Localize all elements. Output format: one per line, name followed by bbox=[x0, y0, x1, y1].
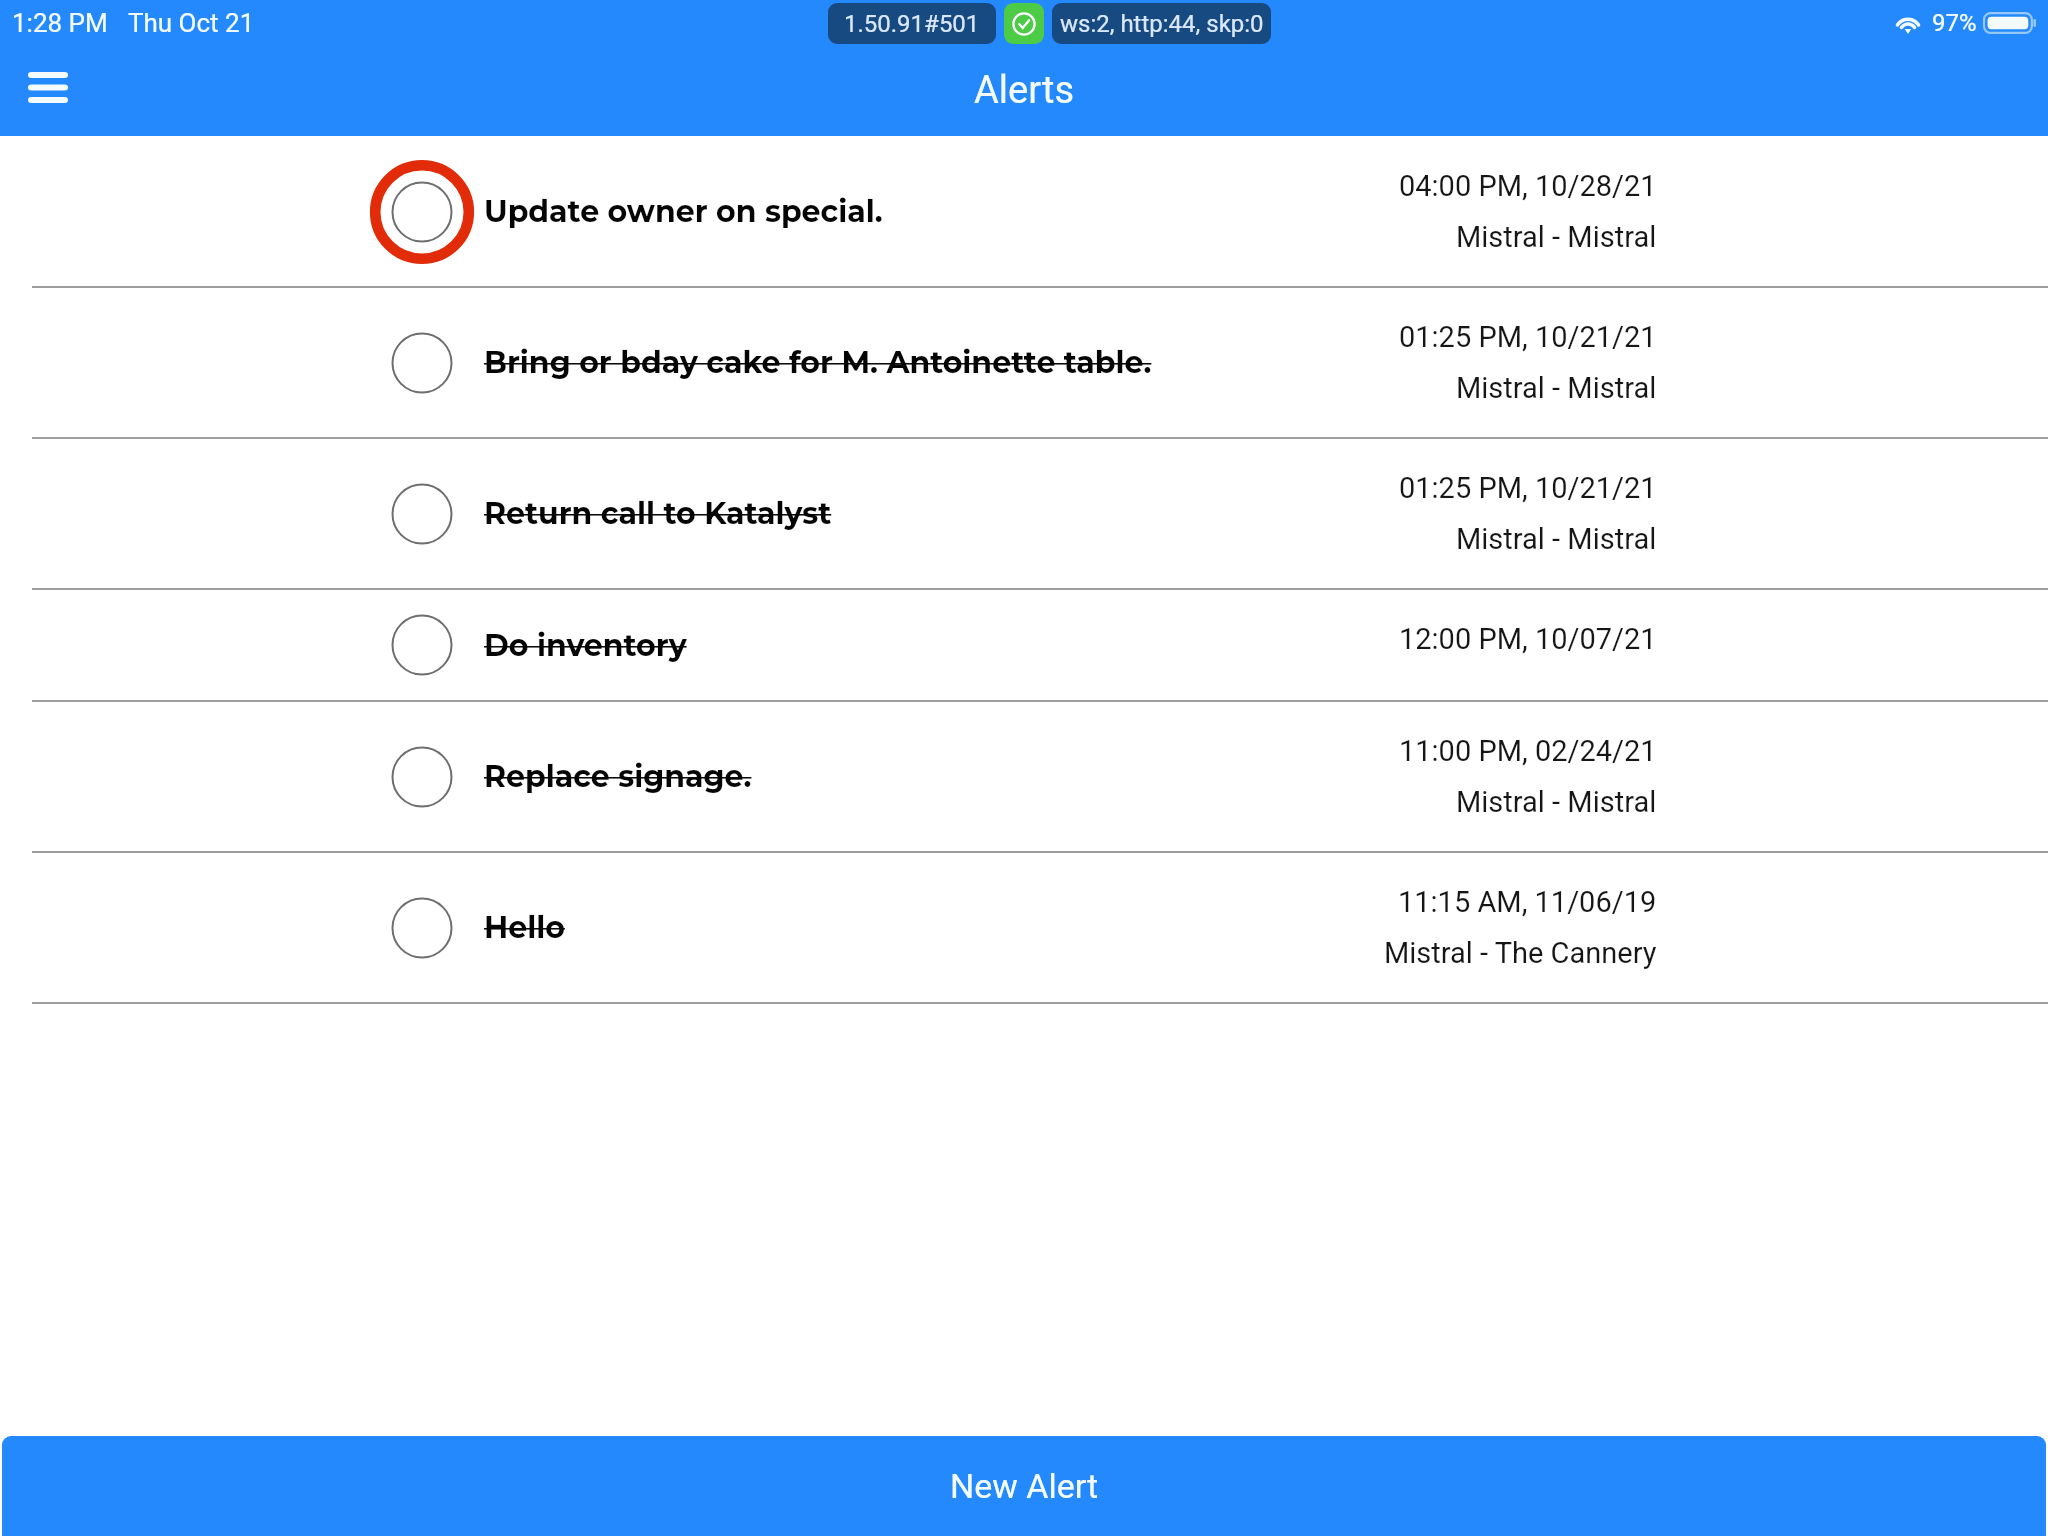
button[interactable]: Mark not done bbox=[372, 313, 472, 413]
staticText: Mistral - The Cannery bbox=[1384, 936, 1657, 970]
button[interactable]: ws:2, http:44, skp:0 bbox=[1052, 3, 1271, 44]
staticText: 1:28 PM bbox=[12, 8, 108, 38]
button[interactable]: Mark not done bbox=[372, 727, 472, 827]
staticText: 11:00 PM, 02/24/21 bbox=[1399, 734, 1657, 768]
staticText: Update owner on special. bbox=[484, 193, 883, 230]
staticText: 1.50.91#501 bbox=[844, 10, 980, 38]
button[interactable]: Mark not done bbox=[0, 852, 2048, 1003]
other: Battery 97 percent bbox=[1984, 11, 2036, 35]
button[interactable]: Mark not done bbox=[0, 701, 2048, 852]
staticText: 97% bbox=[1932, 9, 1977, 37]
staticText: Bring or bday cake for M. Antoinette tab… bbox=[484, 344, 1152, 381]
button[interactable]: Connection OK bbox=[1004, 3, 1044, 44]
staticText: Replace signage. bbox=[484, 758, 752, 795]
staticText: ws:2, http:44, skp:0 bbox=[1060, 10, 1264, 38]
button[interactable]: Mark not done bbox=[372, 464, 472, 564]
staticText: Mistral - Mistral bbox=[1456, 220, 1657, 254]
button[interactable]: Mark done bbox=[372, 162, 472, 262]
button[interactable]: Mark not done bbox=[372, 878, 472, 978]
button[interactable]: Mark not done bbox=[0, 589, 2048, 701]
button[interactable]: Mark done bbox=[0, 136, 2048, 287]
staticText: Thu Oct 21 bbox=[128, 8, 255, 38]
staticText: Hello bbox=[484, 909, 565, 946]
staticText: 01:25 PM, 10/21/21 bbox=[1399, 320, 1657, 354]
staticText: 04:00 PM, 10/28/21 bbox=[1399, 169, 1657, 203]
button[interactable]: Mark not done bbox=[0, 438, 2048, 589]
staticText: 01:25 PM, 10/21/21 bbox=[1399, 471, 1657, 505]
staticText: Do inventory bbox=[484, 627, 687, 664]
button[interactable]: 1.50.91#501 bbox=[828, 3, 996, 44]
staticText: Mistral - Mistral bbox=[1456, 785, 1657, 819]
other: Wi-Fi bbox=[1894, 12, 1922, 34]
button[interactable]: Mark not done bbox=[0, 287, 2048, 438]
button[interactable]: Open navigation menu bbox=[0, 45, 100, 136]
staticText: Return call to Katalyst bbox=[484, 495, 832, 532]
button[interactable]: Mark not done bbox=[372, 595, 472, 695]
staticText: 11:15 AM, 11/06/19 bbox=[1398, 885, 1657, 919]
staticText: Mistral - Mistral bbox=[1456, 371, 1657, 405]
staticText: Mistral - Mistral bbox=[1456, 522, 1657, 556]
button[interactable]: New Alert bbox=[2, 1436, 2046, 1536]
staticText: 12:00 PM, 10/07/21 bbox=[1399, 622, 1657, 656]
staticText: New Alert bbox=[950, 1466, 1099, 1506]
staticText: Alerts bbox=[974, 68, 1075, 113]
